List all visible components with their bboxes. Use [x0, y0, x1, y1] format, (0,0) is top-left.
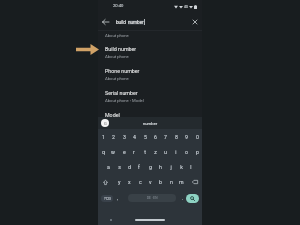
staticText: i: [175, 149, 177, 155]
button[interactable]: Comma: [113, 192, 122, 204]
button[interactable]: d: [124, 159, 134, 174]
button[interactable]: Serial number: [98, 90, 202, 112]
button[interactable]: t: [140, 144, 150, 159]
staticText: z: [154, 149, 157, 155]
staticText: t: [144, 149, 146, 155]
button[interactable]: k: [176, 159, 186, 174]
button[interactable]: 9: [181, 129, 191, 144]
button[interactable]: g: [145, 159, 155, 174]
staticText: number: [128, 20, 144, 25]
staticText: DE · EN: [147, 196, 158, 200]
staticText: 7: [164, 134, 167, 140]
staticText: Serial number: [105, 90, 138, 96]
button[interactable]: h: [155, 159, 165, 174]
staticText: 5: [144, 134, 147, 140]
staticText: x: [128, 179, 131, 185]
button[interactable]: Period: [178, 192, 187, 204]
staticText: r: [133, 149, 135, 155]
button[interactable]: r: [129, 144, 139, 159]
button[interactable]: s: [114, 159, 124, 174]
button[interactable]: Space: [128, 194, 176, 202]
button[interactable]: 0: [192, 129, 202, 144]
button[interactable]: q: [98, 144, 108, 159]
staticText: 4G: [184, 5, 188, 9]
button[interactable]: 8: [171, 129, 181, 144]
staticText: s: [118, 164, 121, 170]
staticText: m: [179, 179, 184, 185]
staticText: 0: [196, 134, 199, 140]
staticText: About phone › Model: [105, 98, 144, 103]
staticText: u: [164, 149, 167, 155]
staticText: g: [149, 164, 152, 170]
staticText: v: [149, 179, 152, 185]
staticText: l: [190, 164, 192, 170]
button[interactable]: z: [150, 144, 160, 159]
staticText: q: [102, 149, 105, 155]
staticText: n: [170, 179, 173, 185]
staticText: About phone: [105, 33, 129, 38]
staticText: ?123: [104, 197, 111, 201]
staticText: j: [170, 164, 172, 170]
button[interactable]: 2: [108, 129, 118, 144]
button[interactable]: Phone number: [98, 68, 202, 90]
staticText: 8: [175, 134, 178, 140]
button[interactable]: l: [186, 159, 196, 174]
staticText: About phone: [105, 54, 129, 59]
staticText: Phone number: [105, 68, 140, 74]
button[interactable]: Back: [99, 16, 111, 28]
button[interactable]: c: [135, 174, 145, 189]
button[interactable]: n: [166, 174, 176, 189]
staticText: ,: [117, 196, 118, 201]
staticText: f: [138, 164, 140, 170]
button[interactable]: 5: [140, 129, 150, 144]
button[interactable]: y: [114, 174, 124, 189]
button[interactable]: 1: [98, 129, 108, 144]
button[interactable]: v: [145, 174, 155, 189]
button[interactable]: f: [134, 159, 144, 174]
button[interactable]: 6: [150, 129, 160, 144]
button[interactable]: w: [108, 144, 118, 159]
button[interactable]: e: [119, 144, 129, 159]
staticText: 9: [185, 134, 188, 140]
button[interactable]: m: [176, 174, 186, 189]
button[interactable]: Search: [186, 194, 199, 203]
staticText: 1: [102, 134, 105, 140]
staticText: w: [111, 149, 115, 155]
button[interactable]: Clear search: [190, 17, 200, 27]
staticText: .: [182, 196, 184, 201]
staticText: 2: [112, 134, 115, 140]
button[interactable]: ?123: [101, 195, 113, 202]
staticText: G: [104, 121, 107, 126]
button[interactable]: 7: [160, 129, 170, 144]
button[interactable]: Model: [98, 112, 202, 134]
button[interactable]: u: [160, 144, 170, 159]
button[interactable]: Shift: [99, 176, 111, 188]
staticText: 20:40: [113, 3, 124, 8]
button[interactable]: j: [166, 159, 176, 174]
staticText: k: [180, 164, 183, 170]
staticText: b: [159, 179, 162, 185]
button[interactable]: Backspace: [189, 176, 201, 188]
button[interactable]: Build number: [98, 46, 202, 68]
staticText: build: [116, 20, 128, 25]
staticText: number: [143, 121, 158, 126]
button[interactable]: 3: [119, 129, 129, 144]
staticText: 6: [154, 134, 157, 140]
staticText: About phone: [105, 76, 129, 81]
button[interactable]: a: [103, 159, 113, 174]
button[interactable]: Google Assistant: [101, 119, 109, 127]
staticText: p: [196, 149, 199, 155]
staticText: h: [159, 164, 162, 170]
staticText: y: [118, 179, 121, 185]
button[interactable]: o: [181, 144, 191, 159]
button[interactable]: i: [171, 144, 181, 159]
staticText: 4: [133, 134, 136, 140]
staticText: d: [128, 164, 131, 170]
button[interactable]: x: [124, 174, 134, 189]
button[interactable]: p: [192, 144, 202, 159]
staticText: Model: [105, 112, 120, 118]
staticText: 3: [123, 134, 126, 140]
button[interactable]: 4: [129, 129, 139, 144]
button[interactable]: b: [155, 174, 165, 189]
staticText: e: [123, 149, 126, 155]
